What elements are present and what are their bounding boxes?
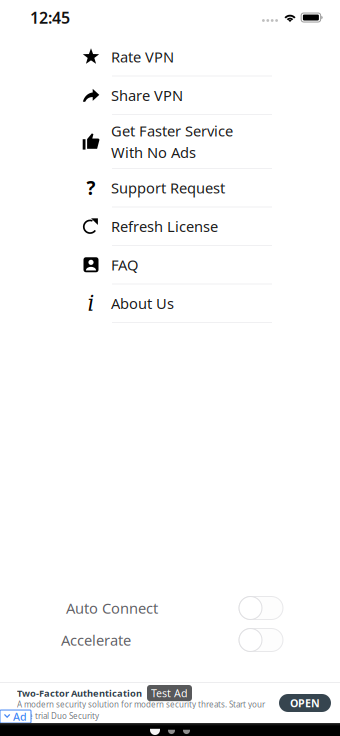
button[interactable]: Back: [150, 729, 160, 736]
staticText: A modern security solution for modern se…: [17, 699, 265, 710]
staticText: Test Ad: [151, 686, 188, 700]
button[interactable]: Get Faster Service: [80, 115, 272, 169]
button[interactable]: Accelerate: [239, 628, 283, 651]
staticText: FAQ: [111, 255, 138, 274]
button[interactable]: Recents: [183, 730, 190, 735]
staticText: Auto Connect: [66, 598, 158, 618]
staticText: ?: [86, 175, 95, 200]
button[interactable]: Home: [168, 730, 175, 735]
staticText: Share VPN: [111, 85, 183, 105]
staticText: 12:45: [30, 7, 70, 28]
staticText: free trial Duo Security: [17, 711, 99, 721]
staticText: Two-Factor Authentication: [17, 687, 142, 699]
staticText: Get Faster Service: [111, 121, 233, 140]
staticText: Accelerate: [61, 630, 131, 650]
button[interactable]: Auto Connect: [239, 596, 283, 619]
button[interactable]: ?: [80, 169, 272, 207]
staticText: Rate VPN: [111, 47, 174, 66]
button[interactable]: FAQ: [80, 246, 272, 284]
button[interactable]: Share VPN: [80, 76, 272, 115]
staticText: With No Ads: [111, 142, 196, 162]
staticText: i: [87, 291, 94, 316]
staticText: OPEN: [290, 696, 320, 710]
staticText: Refresh License: [111, 216, 218, 236]
button[interactable]: i: [80, 284, 272, 323]
staticText: About Us: [111, 293, 174, 313]
staticText: Support Request: [111, 178, 225, 197]
button[interactable]: Refresh License: [80, 207, 272, 246]
button[interactable]: Rate VPN: [80, 38, 272, 76]
staticText: Ad: [13, 709, 27, 724]
button[interactable]: About this ad: [0, 710, 31, 723]
button[interactable]: OPEN: [279, 694, 331, 712]
